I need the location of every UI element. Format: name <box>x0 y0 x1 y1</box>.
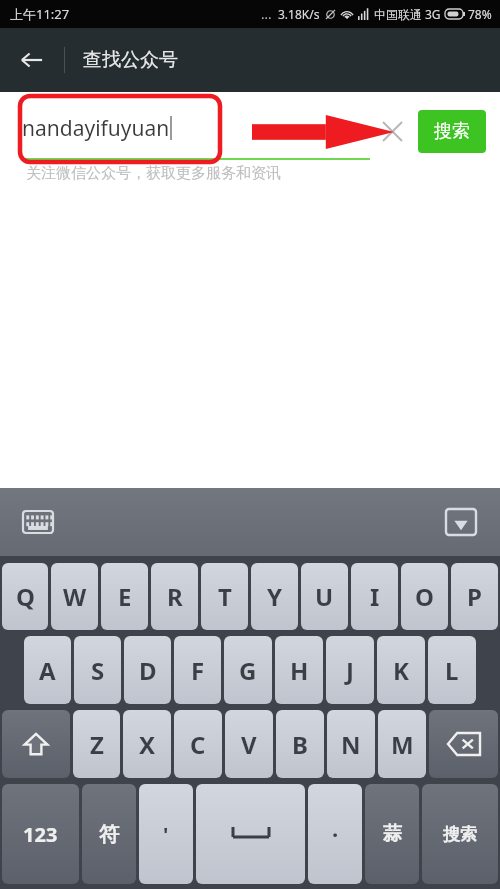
button[interactable]: H <box>275 636 323 704</box>
button[interactable]: J <box>326 636 374 704</box>
button[interactable]: 123 <box>2 784 79 884</box>
staticText: M <box>391 728 414 761</box>
staticText: 123 <box>23 821 58 848</box>
button[interactable]: 搜索 <box>418 110 486 153</box>
button[interactable]: 收起键盘 <box>438 499 484 545</box>
button[interactable]: C <box>174 710 222 778</box>
staticText: N <box>341 728 361 761</box>
button[interactable]: R <box>151 563 198 630</box>
staticText: Z <box>90 728 104 761</box>
staticText: 中国联通 <box>374 7 422 22</box>
button[interactable]: 空格 <box>196 784 305 884</box>
staticText: L <box>445 654 459 687</box>
button[interactable]: L <box>428 636 476 704</box>
staticText: Q <box>16 580 35 613</box>
button[interactable]: 符 <box>82 784 136 884</box>
button[interactable]: B <box>276 710 324 778</box>
button[interactable]: E <box>101 563 148 630</box>
button[interactable]: 删除 <box>429 710 498 778</box>
staticText: 搜索 <box>434 120 470 143</box>
staticText: D <box>139 654 157 687</box>
button[interactable]: O <box>401 563 448 630</box>
staticText: B <box>292 728 308 761</box>
staticText: A <box>39 654 56 687</box>
staticText: nandayifuyuan <box>22 114 170 143</box>
button[interactable]: 搜索 <box>422 784 498 884</box>
staticText: V <box>241 728 257 761</box>
staticText: J <box>346 654 354 687</box>
staticText: 查找公众号 <box>83 48 178 72</box>
staticText: W <box>63 580 87 613</box>
button[interactable]: 清除 <box>370 109 414 153</box>
button[interactable]: 蒜 <box>365 784 419 884</box>
staticText: 3.18K/s <box>278 6 320 22</box>
button[interactable]: M <box>378 710 426 778</box>
staticText: T <box>218 580 232 613</box>
button[interactable]: 上档 <box>2 710 70 778</box>
staticText: S <box>91 654 105 687</box>
button[interactable]: U <box>301 563 348 630</box>
button[interactable]: K <box>377 636 425 704</box>
staticText: Y <box>267 580 283 613</box>
button[interactable]: I <box>351 563 398 630</box>
staticText: X <box>139 728 156 761</box>
staticText: E <box>118 580 132 613</box>
staticText: R <box>167 580 183 613</box>
staticText: O <box>415 580 434 613</box>
button[interactable]: 切换输入法 <box>16 500 60 544</box>
button[interactable]: N <box>327 710 375 778</box>
staticText: 上午11:27 <box>10 5 70 23</box>
staticText: H <box>290 654 309 687</box>
staticText: 符 <box>99 822 119 847</box>
button[interactable]: P <box>451 563 498 630</box>
staticText: U <box>315 580 334 613</box>
staticText: 搜索 <box>443 824 477 845</box>
staticText: F <box>191 654 205 687</box>
staticText: 78% <box>468 6 492 22</box>
button[interactable]: 返回 <box>8 36 56 84</box>
button[interactable]: · <box>308 784 362 884</box>
staticText: ... <box>261 5 272 23</box>
staticText: · <box>332 819 339 849</box>
staticText: 关注微信公众号，获取更多服务和资讯 <box>26 164 281 183</box>
button[interactable]: X <box>123 710 171 778</box>
button[interactable]: S <box>74 636 121 704</box>
button[interactable]: F <box>174 636 221 704</box>
staticText: I <box>370 580 380 613</box>
button[interactable]: D <box>124 636 171 704</box>
staticText: 蒜 <box>383 822 402 846</box>
button[interactable]: Y <box>251 563 298 630</box>
staticText: K <box>393 654 409 687</box>
button[interactable]: V <box>225 710 273 778</box>
staticText: ' <box>163 821 169 848</box>
button[interactable]: T <box>201 563 248 630</box>
button[interactable]: W <box>51 563 98 630</box>
button[interactable]: nandayifuyuan <box>22 102 370 160</box>
staticText: P <box>467 580 482 613</box>
button[interactable]: Z <box>73 710 120 778</box>
button[interactable]: G <box>224 636 272 704</box>
staticText: 3G <box>425 6 441 22</box>
staticText: C <box>190 728 206 761</box>
button[interactable]: A <box>24 636 71 704</box>
staticText: G <box>239 654 257 687</box>
button[interactable]: Q <box>2 563 48 630</box>
button[interactable]: ' <box>139 784 193 884</box>
